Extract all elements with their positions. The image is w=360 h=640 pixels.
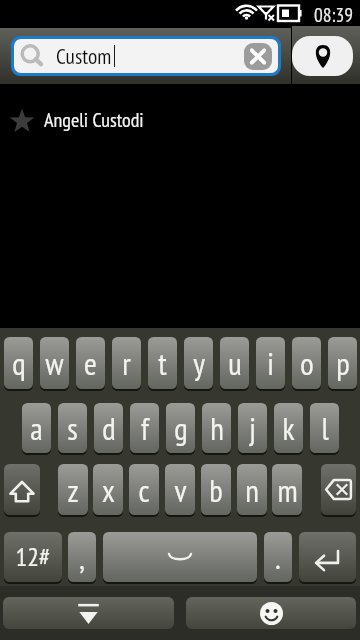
staticText: q bbox=[12, 343, 26, 383]
button[interactable]: e bbox=[76, 337, 105, 391]
staticText: e bbox=[84, 343, 97, 383]
staticText: x bbox=[102, 470, 115, 510]
staticText: a bbox=[30, 408, 43, 448]
staticText: n bbox=[245, 470, 259, 510]
button[interactable]: s bbox=[58, 403, 87, 455]
button[interactable]: n bbox=[237, 464, 267, 517]
staticText: 08:39 bbox=[314, 2, 354, 27]
staticText: v bbox=[174, 470, 187, 510]
staticText: k bbox=[282, 408, 295, 448]
button[interactable]: , bbox=[68, 532, 96, 584]
button[interactable]: Clear search bbox=[244, 43, 272, 70]
button[interactable]: h bbox=[202, 403, 231, 455]
staticText: j bbox=[249, 408, 256, 448]
staticText: w bbox=[45, 343, 64, 383]
button[interactable]: Enter bbox=[299, 532, 356, 584]
button[interactable]: Hide keyboard bbox=[3, 597, 174, 629]
staticText: d bbox=[102, 408, 116, 448]
staticText: y bbox=[193, 343, 205, 383]
staticText: r bbox=[122, 343, 131, 383]
button[interactable]: a bbox=[22, 403, 51, 455]
button[interactable]: Emoji bbox=[186, 597, 356, 629]
button[interactable]: y bbox=[184, 337, 213, 391]
staticText: b bbox=[209, 470, 223, 510]
staticText: p bbox=[336, 343, 350, 383]
button[interactable]: i bbox=[256, 337, 285, 391]
button[interactable]: z bbox=[58, 464, 88, 517]
staticText: Custom bbox=[56, 42, 112, 70]
button[interactable]: Angeli Custodi bbox=[0, 86, 360, 154]
staticText: g bbox=[174, 408, 188, 448]
staticText: o bbox=[300, 343, 314, 383]
button[interactable]: q bbox=[4, 337, 33, 391]
button[interactable]: 12# bbox=[4, 532, 62, 584]
button[interactable]: f bbox=[130, 403, 159, 455]
button[interactable]: r bbox=[112, 337, 141, 391]
staticText: z bbox=[67, 470, 79, 510]
staticText: 12# bbox=[15, 540, 51, 574]
button[interactable]: u bbox=[220, 337, 249, 391]
staticText: Angeli Custodi bbox=[44, 107, 144, 133]
staticText: . bbox=[275, 538, 281, 577]
button[interactable]: g bbox=[166, 403, 195, 455]
button[interactable]: My location bbox=[292, 36, 353, 76]
staticText: u bbox=[228, 343, 242, 383]
button[interactable]: w bbox=[40, 337, 69, 391]
button[interactable]: j bbox=[238, 403, 267, 455]
staticText: c bbox=[138, 470, 150, 510]
button[interactable]: c bbox=[129, 464, 159, 517]
button[interactable]: k bbox=[274, 403, 303, 455]
staticText: i bbox=[267, 343, 274, 383]
button[interactable]: . bbox=[264, 532, 292, 584]
staticText: t bbox=[158, 343, 167, 383]
button[interactable]: t bbox=[148, 337, 177, 391]
button[interactable]: b bbox=[201, 464, 231, 517]
button[interactable]: v bbox=[165, 464, 195, 517]
button[interactable]: Backspace bbox=[321, 464, 356, 517]
staticText: , bbox=[79, 538, 85, 577]
button[interactable]: l bbox=[310, 403, 339, 455]
button[interactable]: Custom bbox=[14, 39, 278, 73]
staticText: l bbox=[321, 408, 329, 448]
button[interactable]: x bbox=[93, 464, 123, 517]
staticText: h bbox=[210, 408, 224, 448]
button[interactable]: Shift bbox=[4, 464, 40, 517]
button[interactable]: Space bbox=[103, 532, 257, 584]
button[interactable]: m bbox=[272, 464, 302, 517]
staticText: s bbox=[67, 408, 78, 448]
button[interactable]: p bbox=[328, 337, 357, 391]
staticText: m bbox=[277, 470, 298, 510]
staticText: f bbox=[141, 408, 149, 448]
button[interactable]: d bbox=[94, 403, 123, 455]
button[interactable]: o bbox=[292, 337, 321, 391]
